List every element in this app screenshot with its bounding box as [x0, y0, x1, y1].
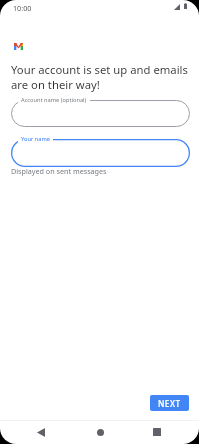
other: Battery — [184, 3, 187, 9]
button[interactable]: Back — [29, 420, 53, 444]
other: Mobile signal — [174, 4, 180, 10]
staticText: Your name — [21, 135, 50, 143]
staticText: Account name (optional) — [21, 96, 87, 104]
button[interactable]: Recent apps — [145, 420, 169, 444]
button[interactable]: Your name — [11, 139, 190, 167]
staticText: 10:00 — [13, 3, 32, 13]
staticText: NEXT — [158, 398, 181, 409]
other: Gmail — [14, 43, 23, 50]
staticText: Your account is set up and emails are on… — [11, 62, 197, 92]
button[interactable]: NEXT — [150, 395, 189, 411]
button[interactable]: Account name (optional) — [11, 100, 190, 127]
staticText: Displayed on sent messages — [11, 166, 107, 176]
button[interactable]: Home — [88, 420, 112, 444]
